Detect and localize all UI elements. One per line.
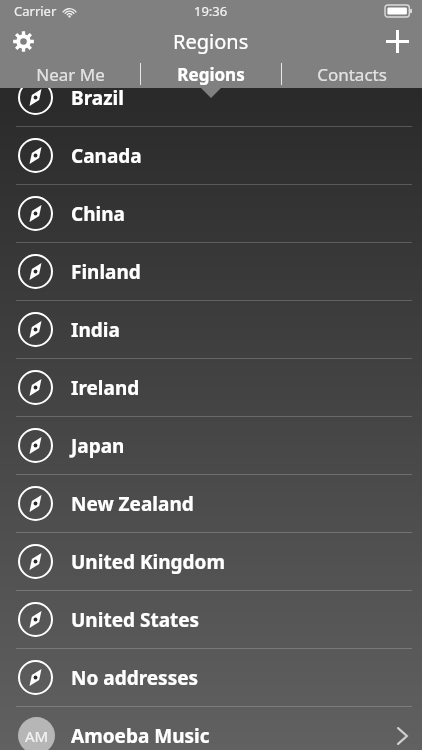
button[interactable]: Canada — [0, 127, 422, 184]
button[interactable]: Regions — [141, 60, 281, 88]
button[interactable]: No addresses — [0, 649, 422, 706]
staticText: Ireland — [71, 375, 140, 401]
button[interactable]: AM — [0, 707, 422, 750]
button[interactable]: India — [0, 301, 422, 358]
staticText: 19:36 — [194, 2, 228, 20]
staticText: United Kingdom — [71, 549, 225, 575]
button[interactable]: Near Me — [0, 60, 140, 88]
staticText: New Zealand — [71, 491, 194, 517]
staticText: Canada — [71, 143, 142, 169]
button[interactable]: Contacts — [282, 60, 422, 88]
staticText: India — [71, 317, 120, 343]
button[interactable]: United States — [0, 591, 422, 648]
staticText: Brazil — [71, 85, 124, 111]
button[interactable]: Japan — [0, 417, 422, 474]
staticText: Finland — [71, 259, 141, 285]
staticText: No addresses — [71, 665, 199, 691]
staticText: Carrier — [14, 2, 57, 20]
staticText: Amoeba Music — [71, 723, 210, 749]
button[interactable]: United Kingdom — [0, 533, 422, 590]
button[interactable]: Add — [372, 22, 422, 60]
button[interactable]: Brazil — [0, 69, 422, 126]
staticText: Regions — [173, 28, 249, 55]
staticText: Japan — [71, 433, 125, 459]
button[interactable]: New Zealand — [0, 475, 422, 532]
button[interactable]: China — [0, 185, 422, 242]
staticText: United States — [71, 607, 200, 633]
button[interactable]: Ireland — [0, 359, 422, 416]
staticText: Contacts — [317, 63, 387, 86]
staticText: China — [71, 201, 125, 227]
staticText: AM — [25, 726, 49, 746]
staticText: Near Me — [36, 63, 105, 86]
button[interactable]: Finland — [0, 243, 422, 300]
button[interactable]: Settings — [0, 22, 46, 60]
staticText: Regions — [177, 63, 245, 86]
